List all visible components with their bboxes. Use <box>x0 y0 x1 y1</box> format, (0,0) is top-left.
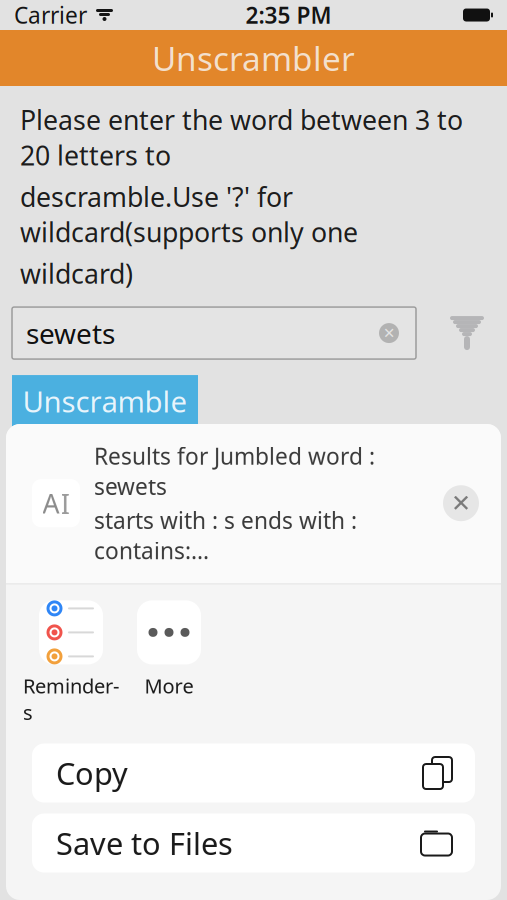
staticText: Unscramble <box>22 382 187 421</box>
button[interactable]: Close <box>443 485 479 521</box>
staticText: Reminders <box>23 672 119 725</box>
staticText: ✕ <box>451 490 471 517</box>
staticText: I <box>60 485 69 522</box>
staticText: Please enter the word between 3 to 20 le… <box>20 102 463 173</box>
staticText: Carrier <box>14 0 87 30</box>
button[interactable]: Unscramble <box>12 375 198 427</box>
button[interactable]: Share <box>437 443 485 492</box>
button[interactable]: Reminders <box>22 600 120 725</box>
button[interactable]: Save to Files <box>32 813 475 872</box>
staticText: More <box>144 672 193 699</box>
button[interactable]: Filter <box>441 305 493 361</box>
staticText: 2:35 PM <box>245 0 331 30</box>
staticText: ✕ <box>383 325 395 341</box>
staticText: wildcard) <box>20 256 133 291</box>
staticText: A <box>42 485 59 521</box>
staticText: starts with : s ends with : contains:... <box>94 505 363 565</box>
staticText: 6 Letter Words <box>26 495 231 534</box>
staticText: Copy <box>56 753 128 793</box>
staticText: sewets <box>26 314 115 352</box>
staticText: descramble.Use '?' for wildcard(supports… <box>20 179 358 250</box>
button[interactable]: Clear text <box>376 320 402 346</box>
button[interactable]: Copy <box>32 743 475 802</box>
staticText: Unscrambler <box>152 36 355 80</box>
staticText: Save to Files <box>56 823 233 863</box>
staticText: Results for Jumbled word : sewets <box>94 441 375 501</box>
staticText: Filtered Results <box>146 449 361 486</box>
button[interactable]: More <box>120 600 218 699</box>
